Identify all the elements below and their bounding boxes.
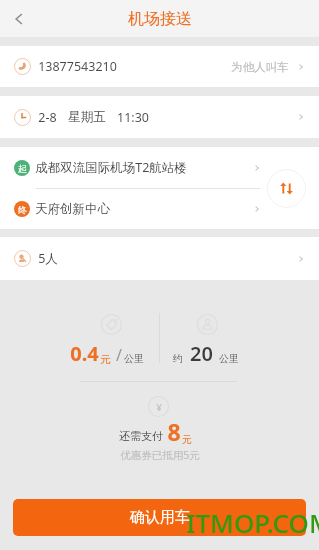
staticText: 0.4: [70, 340, 99, 367]
staticText: /: [116, 344, 122, 366]
staticText: 5人: [38, 250, 58, 267]
staticText: 公里: [124, 352, 144, 365]
staticText: 元: [100, 353, 111, 366]
staticText: 元: [182, 433, 192, 446]
staticText: 天府创新中心: [35, 201, 110, 217]
button[interactable]: 13877543210: [0, 46, 319, 87]
staticText: 优惠券已抵用5元: [120, 448, 200, 462]
button[interactable]: Back: [0, 0, 37, 37]
staticText: 为他人叫车: [231, 60, 289, 74]
button[interactable]: 2-8: [0, 96, 319, 138]
button[interactable]: 终: [0, 189, 319, 229]
staticText: 公里: [219, 352, 239, 365]
button[interactable]: Swap origin and destination: [267, 169, 306, 208]
staticText: 2-8: [38, 109, 57, 126]
staticText: 机场接送: [128, 9, 192, 29]
button[interactable]: 确认用车: [13, 499, 306, 536]
staticText: 11:30: [117, 109, 149, 126]
staticText: 起: [18, 163, 27, 174]
staticText: 20: [190, 340, 213, 367]
staticText: 还需支付: [119, 429, 163, 443]
staticText: 确认用车: [130, 508, 190, 527]
button[interactable]: 起: [0, 147, 319, 188]
staticText: 星期五: [68, 109, 106, 125]
staticText: 8: [167, 416, 181, 447]
staticText: 约: [173, 352, 183, 365]
staticText: ITMOP.COM: [186, 505, 319, 540]
button[interactable]: 5人: [0, 237, 319, 280]
staticText: 终: [18, 204, 27, 215]
staticText: 成都双流国际机场T2航站楼: [35, 159, 187, 176]
staticText: 13877543210: [38, 58, 117, 75]
staticText: ¥: [156, 401, 162, 413]
